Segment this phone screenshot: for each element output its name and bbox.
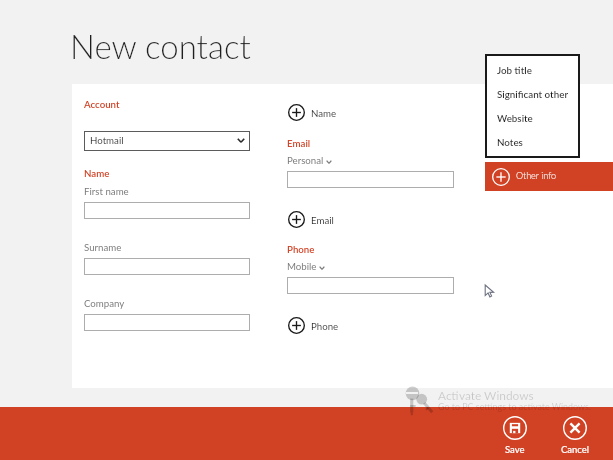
staticText: Company [84,297,125,309]
staticText: Surname [84,241,122,253]
button[interactable]: Notes [485,130,580,154]
staticText: Website [497,112,533,124]
staticText: Name [311,107,337,119]
staticText: Email [311,214,334,226]
button[interactable]: Significant other [485,82,580,106]
staticText: Hotmail [90,134,124,146]
button[interactable]: Personal [287,154,332,166]
staticText: Other info [516,170,557,181]
button[interactable]: Save [491,416,539,455]
button[interactable] [84,202,250,219]
staticText: Mobile [287,260,317,272]
staticText: Save [505,444,525,455]
button[interactable] [84,314,250,331]
button[interactable]: Name [288,104,337,121]
staticText: Phone [287,243,315,255]
other: Save [503,416,527,440]
staticText: Significant other [497,88,569,100]
staticText: Phone [311,320,339,332]
staticText: Email [287,137,311,149]
staticText: Job title [497,64,532,76]
button[interactable]: Hotmail [84,131,250,151]
staticText: Activate Windows [438,388,534,402]
button[interactable]: Cancel [551,416,599,455]
button[interactable]: Phone [288,317,339,334]
button[interactable] [287,277,454,294]
button[interactable]: Website [485,106,580,130]
staticText: Notes [497,136,523,148]
staticText: Name [84,167,110,179]
button[interactable]: Mobile [287,260,325,272]
button[interactable] [84,258,250,275]
button[interactable]: Job title [485,58,580,82]
staticText: Account [84,98,120,110]
staticText: New contact [70,26,251,66]
staticText: Cancel [561,444,590,455]
staticText: Go to PC settings to activate Windows. [438,401,591,412]
button[interactable]: Other info [485,162,613,191]
button[interactable]: Email [288,211,334,228]
staticText: First name [84,185,129,197]
button[interactable] [287,171,454,188]
other: Cancel [563,416,587,440]
staticText: Personal [287,154,324,166]
